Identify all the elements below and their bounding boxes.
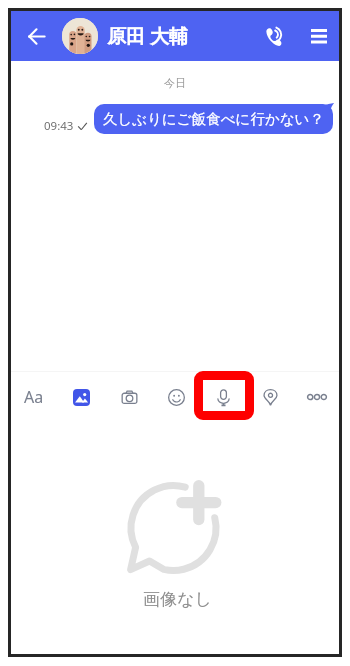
staticText: 09:43 (44, 118, 74, 134)
button[interactable]: Menu (302, 19, 336, 53)
staticText: 久しぶりにご飯食べに行かない？ (103, 110, 324, 128)
staticText: 原田 大輔 (107, 23, 188, 49)
staticText: 今日 (164, 76, 186, 90)
button[interactable]: Text format (17, 380, 51, 414)
staticText: 画像なし (143, 589, 212, 610)
button[interactable]: Voice message (206, 380, 240, 414)
button[interactable]: Emoji (159, 380, 193, 414)
button[interactable]: Camera (112, 380, 146, 414)
staticText: Aa (24, 386, 44, 408)
button[interactable]: Gallery (64, 380, 98, 414)
button[interactable]: 久しぶりにご飯食べに行かない？ (94, 104, 333, 134)
button[interactable]: Location (253, 380, 287, 414)
button[interactable]: More (300, 380, 334, 414)
button[interactable]: Back (19, 19, 53, 53)
button[interactable]: Profile photo (62, 18, 98, 54)
button[interactable]: Call (257, 19, 291, 53)
